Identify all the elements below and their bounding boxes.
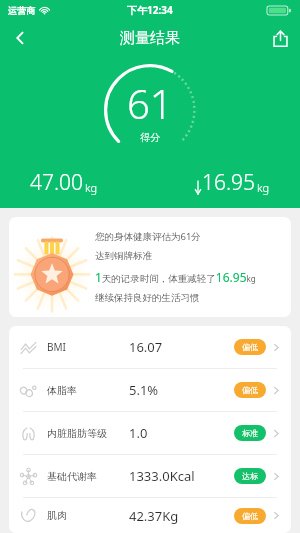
staticText: 下午12:34 — [127, 3, 173, 17]
staticText: 偏低 — [242, 511, 258, 521]
staticText: 偏低 — [242, 342, 258, 352]
staticText: 47.00 — [30, 168, 84, 197]
staticText: 标准 — [242, 428, 258, 438]
staticText: 42.37Kg — [129, 507, 179, 525]
staticText: 偏低 — [242, 385, 258, 395]
button[interactable]: 基础代谢率 — [9, 455, 291, 497]
staticText: 5.1% — [129, 381, 159, 399]
staticText: kg — [85, 180, 98, 195]
staticText: BMI — [47, 340, 66, 354]
button[interactable]: Back — [0, 20, 40, 56]
staticText: 得分 — [140, 131, 160, 144]
staticText: 16.95 — [202, 168, 256, 197]
staticText: 内脏脂肪等级 — [47, 427, 107, 440]
staticText: 61 — [127, 76, 173, 130]
staticText: 达标 — [242, 471, 258, 481]
staticText: 体脂率 — [47, 384, 77, 397]
button[interactable]: Share — [260, 20, 300, 56]
staticText: 1.0 — [129, 424, 148, 442]
staticText: 达到铜牌标准 — [95, 250, 152, 262]
staticText: 16.07 — [129, 338, 163, 356]
staticText: 1333.0Kcal — [129, 467, 195, 485]
staticText: 继续保持良好的生活习惯 — [95, 292, 200, 304]
staticText: 您的身体健康评估为61分 — [95, 230, 201, 243]
button[interactable]: 肌肉 — [9, 498, 291, 533]
staticText: 肌肉 — [47, 509, 67, 522]
button[interactable]: 您的身体健康评估为61分 — [9, 217, 291, 317]
staticText: 基础代谢率 — [47, 470, 97, 483]
staticText: 运营商 — [8, 5, 35, 16]
staticText: 测量结果 — [120, 29, 180, 48]
button[interactable]: BMI — [9, 326, 291, 368]
staticText: 1天的记录时间，体重减轻了16.95kg — [95, 269, 256, 285]
staticText: kg — [257, 180, 270, 195]
button[interactable]: 体脂率 — [9, 369, 291, 411]
button[interactable]: 内脏脂肪等级 — [9, 412, 291, 454]
